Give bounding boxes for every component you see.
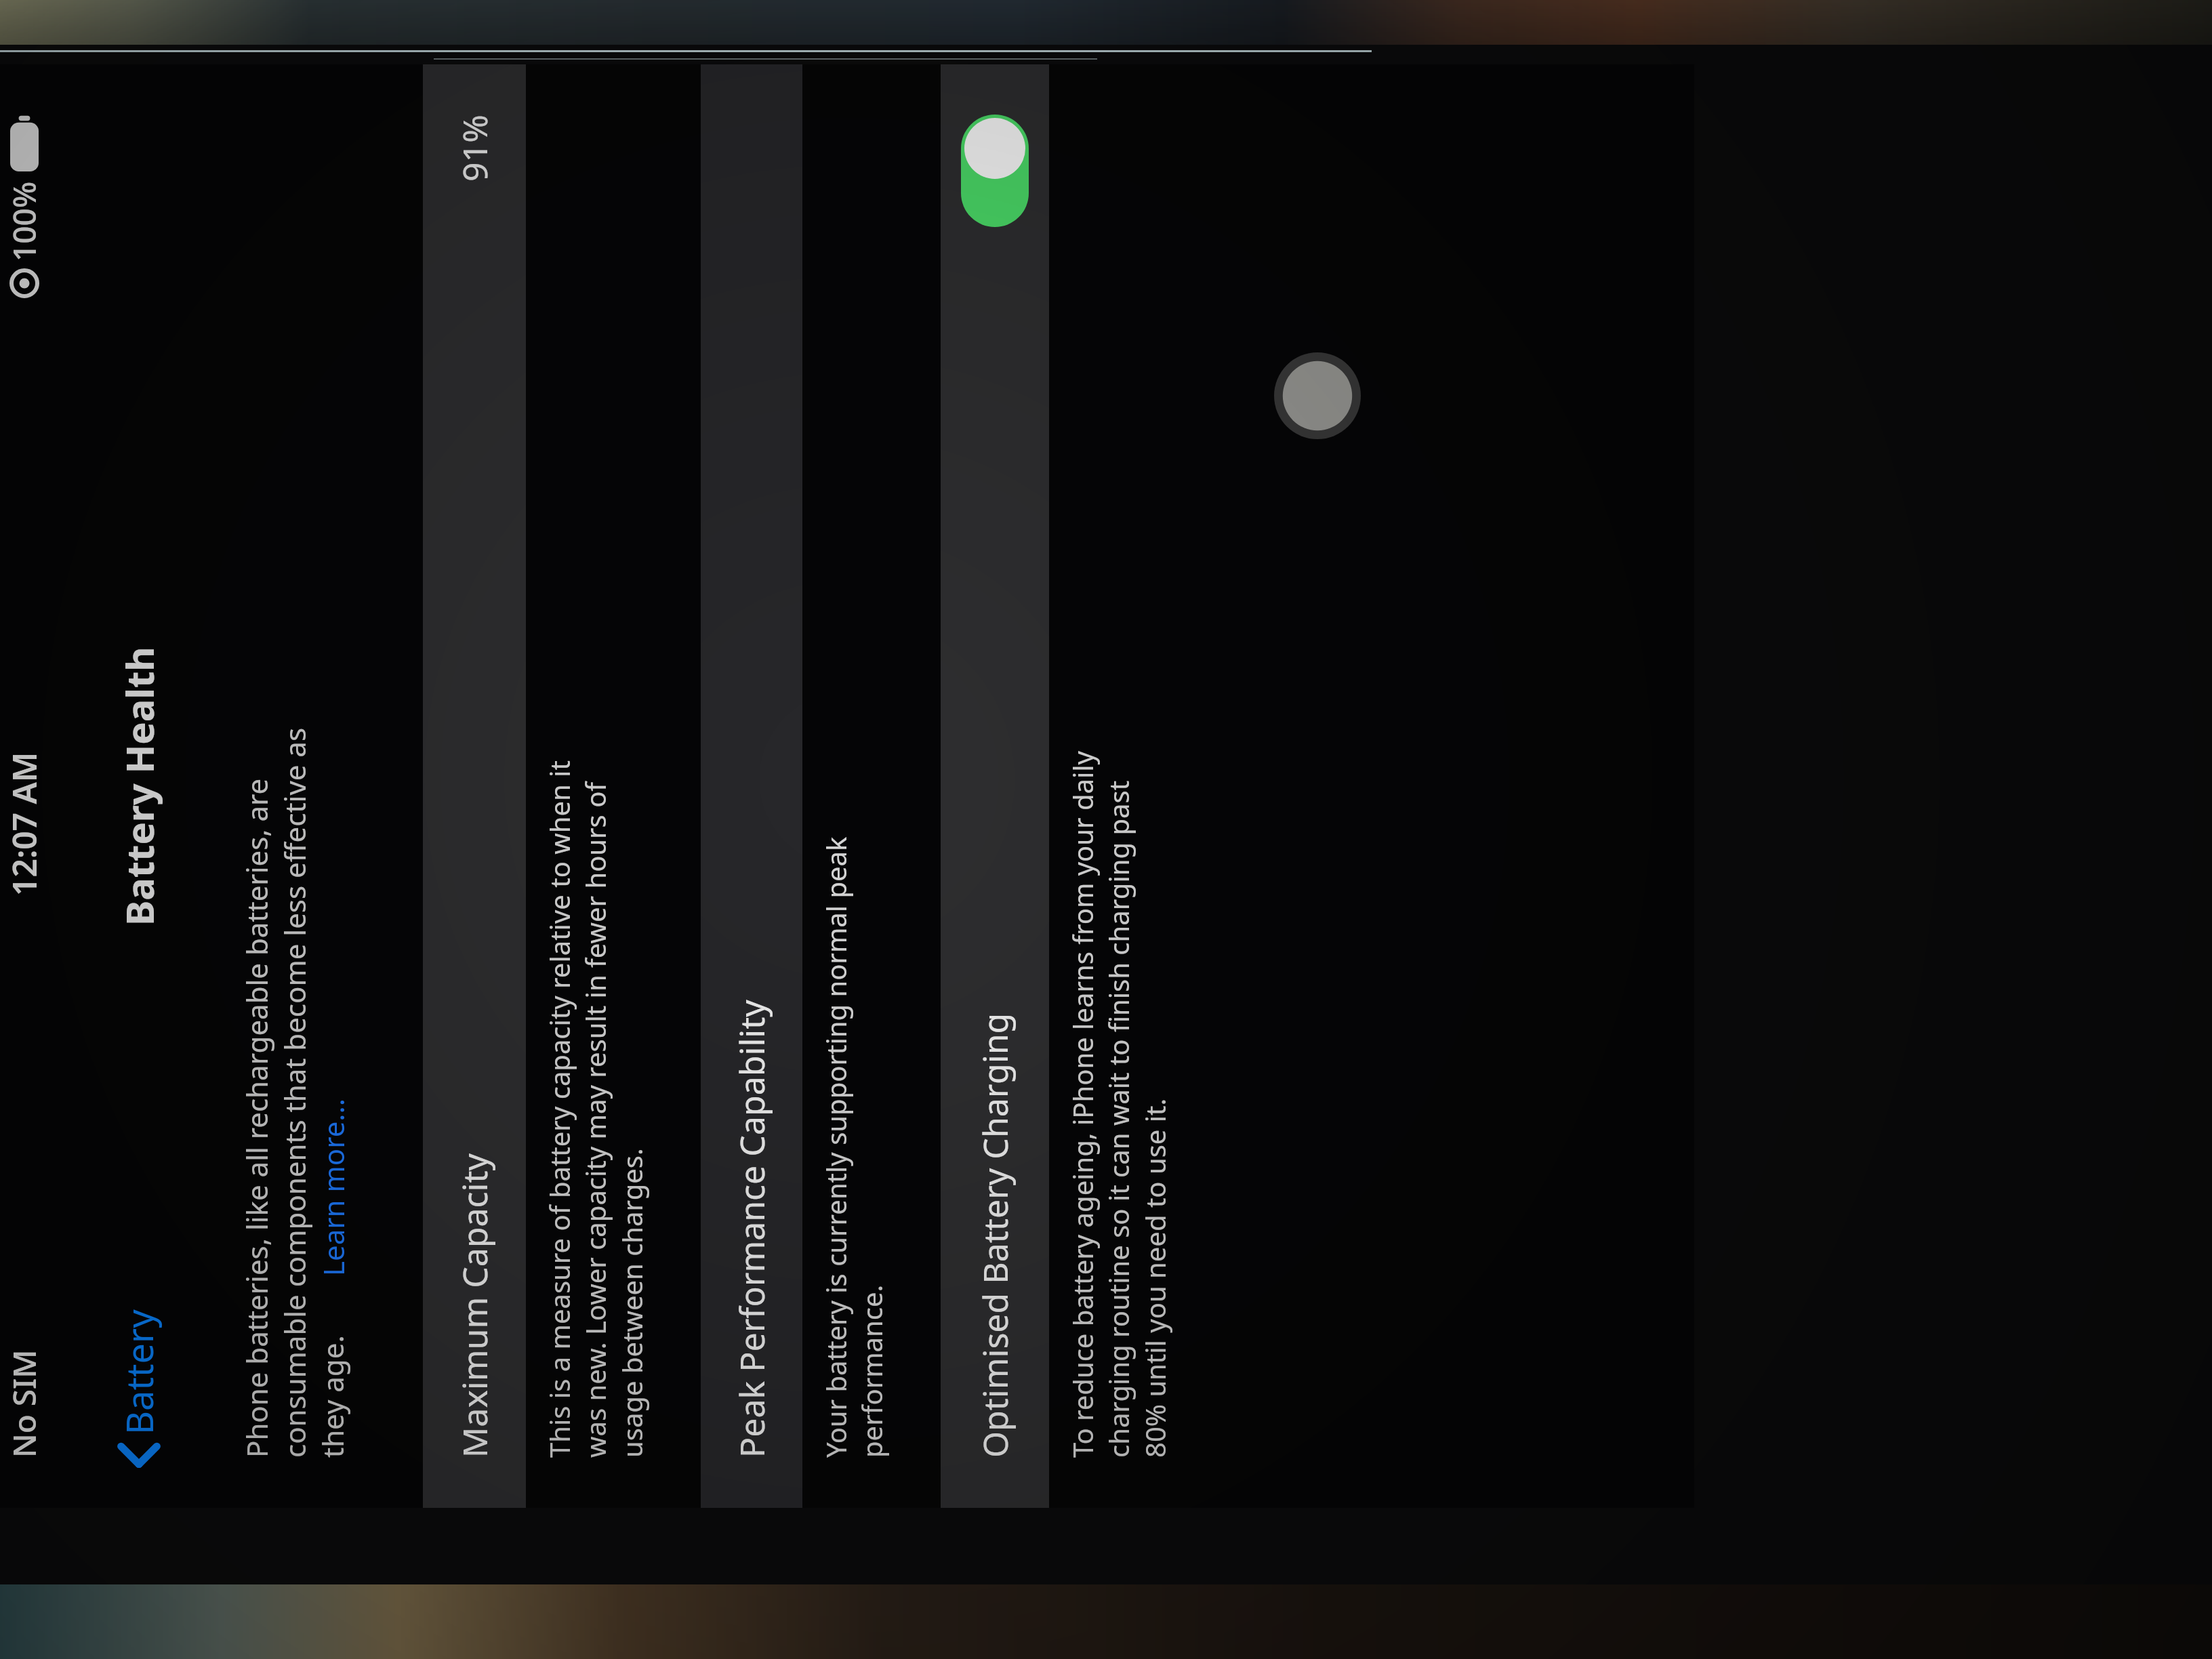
staticText: Battery Health xyxy=(113,647,165,926)
staticText: To reduce battery ageing, iPhone learns … xyxy=(1064,751,1174,1458)
button[interactable]: Maximum Capacity xyxy=(423,64,526,1508)
staticText: Your battery is currently supporting nor… xyxy=(817,836,890,1458)
button[interactable]: Learn more... xyxy=(314,1098,352,1276)
staticText: 100% xyxy=(3,181,45,262)
staticText: No SIM xyxy=(3,1349,45,1458)
button[interactable]: Peak Performance Capability xyxy=(701,64,802,1508)
button[interactable]: Optimised Battery Charging xyxy=(941,64,1049,1508)
staticText: Phone batteries, like all rechargeable b… xyxy=(237,727,352,1458)
button[interactable]: Battery xyxy=(103,1300,175,1478)
staticText: Peak Performance Capability xyxy=(729,1000,775,1458)
staticText: Battery xyxy=(114,1309,164,1435)
button[interactable]: Optimised Battery Charging, on xyxy=(961,115,1029,227)
staticText: This is a measure of battery capacity re… xyxy=(541,760,651,1458)
staticText: 91% xyxy=(451,115,497,182)
staticText: Optimised Battery Charging xyxy=(972,1012,1018,1458)
staticText: Maximum Capacity xyxy=(451,1153,497,1458)
staticText: 12:07 AM xyxy=(2,752,46,896)
staticText: Learn more... xyxy=(314,1098,352,1276)
